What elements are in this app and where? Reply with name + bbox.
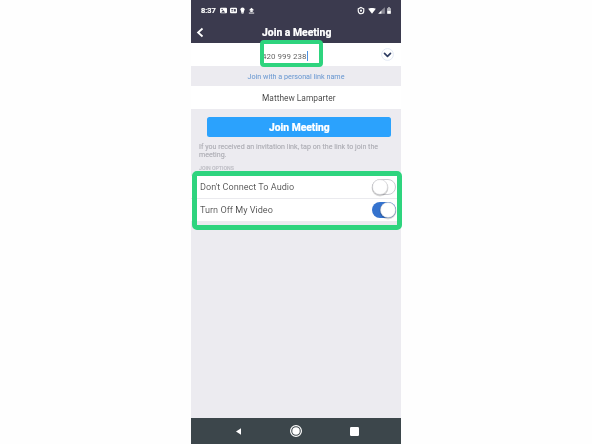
staticText: Don't Connect To Audio: [200, 182, 295, 193]
staticText: Turn Off My Video: [200, 205, 273, 216]
button[interactable]: Home: [285, 420, 307, 442]
button[interactable]: Join Meeting: [207, 117, 391, 137]
button[interactable]: Back: [191, 22, 211, 42]
staticText: JOIN OPTIONS: [199, 165, 234, 171]
staticText: 8:37: [201, 6, 216, 15]
staticText: 420 999 238: [262, 52, 307, 61]
staticText: If you received an invitation link, tap …: [199, 142, 383, 158]
button[interactable]: Back: [227, 420, 249, 442]
staticText: Join a Meeting: [262, 26, 332, 38]
staticText: Matthew Lamparter: [262, 93, 336, 103]
staticText: Join Meeting: [269, 121, 330, 133]
button[interactable]: Meeting ID history: [381, 48, 394, 61]
button[interactable]: Turn Off My Video: [191, 199, 401, 221]
button[interactable]: Don't Connect To Audio: [191, 176, 401, 198]
button[interactable]: Join with a personal link name: [191, 72, 401, 80]
button[interactable]: Recent apps: [343, 420, 365, 442]
